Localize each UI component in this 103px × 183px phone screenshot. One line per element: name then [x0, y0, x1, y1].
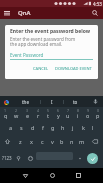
staticText: g [51, 124, 55, 131]
staticText: 3 [26, 108, 29, 113]
staticText: v [51, 138, 54, 145]
staticText: l [92, 124, 94, 131]
button[interactable]: to [64, 96, 86, 107]
button[interactable]: v [47, 134, 57, 148]
staticText: q [4, 112, 8, 119]
staticText: h [61, 124, 65, 131]
button[interactable]: I [41, 96, 63, 107]
staticText: z [19, 138, 22, 145]
staticText: 7 [67, 108, 70, 113]
staticText: k [82, 124, 85, 131]
button[interactable]: Search [89, 7, 101, 19]
button[interactable]: x [26, 134, 37, 148]
staticText: 4:53 [93, 1, 102, 7]
staticText: I [51, 99, 53, 105]
staticText: x [30, 138, 33, 145]
staticText: Enter the event password from the app do… [10, 36, 76, 48]
staticText: Enter the event password below [10, 28, 91, 35]
staticText: e [26, 112, 30, 119]
staticText: ?123 [2, 155, 12, 161]
button[interactable]: the [11, 96, 40, 107]
staticText: d [31, 124, 35, 131]
button[interactable]: d [27, 120, 38, 134]
button[interactable]: 1 [0, 107, 11, 120]
staticText: 9 [87, 108, 90, 113]
staticText: Event Password [10, 52, 44, 58]
staticText: s [20, 124, 23, 131]
staticText: m [79, 138, 85, 145]
staticText: to [73, 99, 78, 105]
button[interactable]: Shift [0, 134, 15, 148]
button[interactable]: Recents [70, 168, 86, 183]
button[interactable]: s [16, 120, 27, 134]
button[interactable]: 9 [83, 107, 93, 120]
button[interactable]: Home [44, 168, 60, 183]
staticText: o [86, 112, 90, 119]
staticText: 1 [4, 108, 7, 113]
staticText: c [41, 138, 44, 145]
staticText: 4 [37, 108, 40, 113]
staticText: the [22, 99, 29, 105]
staticText: 5 [47, 108, 50, 113]
button[interactable]: m [77, 134, 87, 148]
staticText: f [42, 124, 44, 131]
button[interactable]: DOWNLOAD EVENT [52, 64, 95, 73]
button[interactable]: 0 [93, 107, 103, 120]
button[interactable]: 3 [22, 107, 33, 120]
staticText: t [47, 112, 49, 119]
button[interactable]: Google [3, 99, 9, 105]
button[interactable]: ?123 [0, 148, 13, 168]
staticText: b [60, 138, 64, 145]
button[interactable]: h [58, 120, 68, 134]
button[interactable]: Emoji [25, 148, 35, 168]
button[interactable]: 5 [43, 107, 53, 120]
button[interactable]: 8 [73, 107, 83, 120]
button[interactable]: g [48, 120, 58, 134]
button[interactable]: Back [17, 168, 33, 183]
staticText: r [37, 112, 40, 119]
button[interactable]: c [37, 134, 47, 148]
staticText: u [66, 112, 70, 119]
button[interactable]: b [57, 134, 67, 148]
staticText: 6 [57, 108, 60, 113]
button[interactable]: Backspace [87, 134, 103, 148]
button[interactable]: k [78, 120, 88, 134]
staticText: p [96, 112, 100, 119]
staticText: a [9, 124, 13, 131]
staticText: CANCEL [33, 66, 49, 71]
button[interactable]: CANCEL [30, 64, 52, 73]
staticText: 2 [15, 108, 18, 113]
button[interactable]: 2 [11, 107, 22, 120]
button[interactable]: l [88, 120, 98, 134]
button[interactable]: j [68, 120, 78, 134]
staticText: 8 [77, 108, 80, 113]
button[interactable]: z [15, 134, 26, 148]
button[interactable]: 7 [63, 107, 73, 120]
staticText: w [14, 112, 19, 119]
button[interactable]: Voice input [90, 96, 101, 107]
button[interactable]: f [38, 120, 48, 134]
staticText: j [72, 124, 74, 131]
button[interactable]: Period [75, 148, 85, 168]
staticText: QnA [18, 9, 31, 17]
button[interactable]: Enter [84, 150, 100, 166]
staticText: i [77, 112, 79, 119]
staticText: 0 [97, 108, 100, 113]
button[interactable]: n [67, 134, 77, 148]
button[interactable]: Menu [1, 7, 13, 19]
button[interactable]: a [5, 120, 16, 134]
staticText: DOWNLOAD EVENT [55, 66, 92, 71]
staticText: n [70, 138, 74, 145]
button[interactable]: 4 [33, 107, 43, 120]
button[interactable]: 6 [53, 107, 63, 120]
button[interactable]: Change keyboard [13, 148, 23, 168]
staticText: y [57, 112, 60, 119]
